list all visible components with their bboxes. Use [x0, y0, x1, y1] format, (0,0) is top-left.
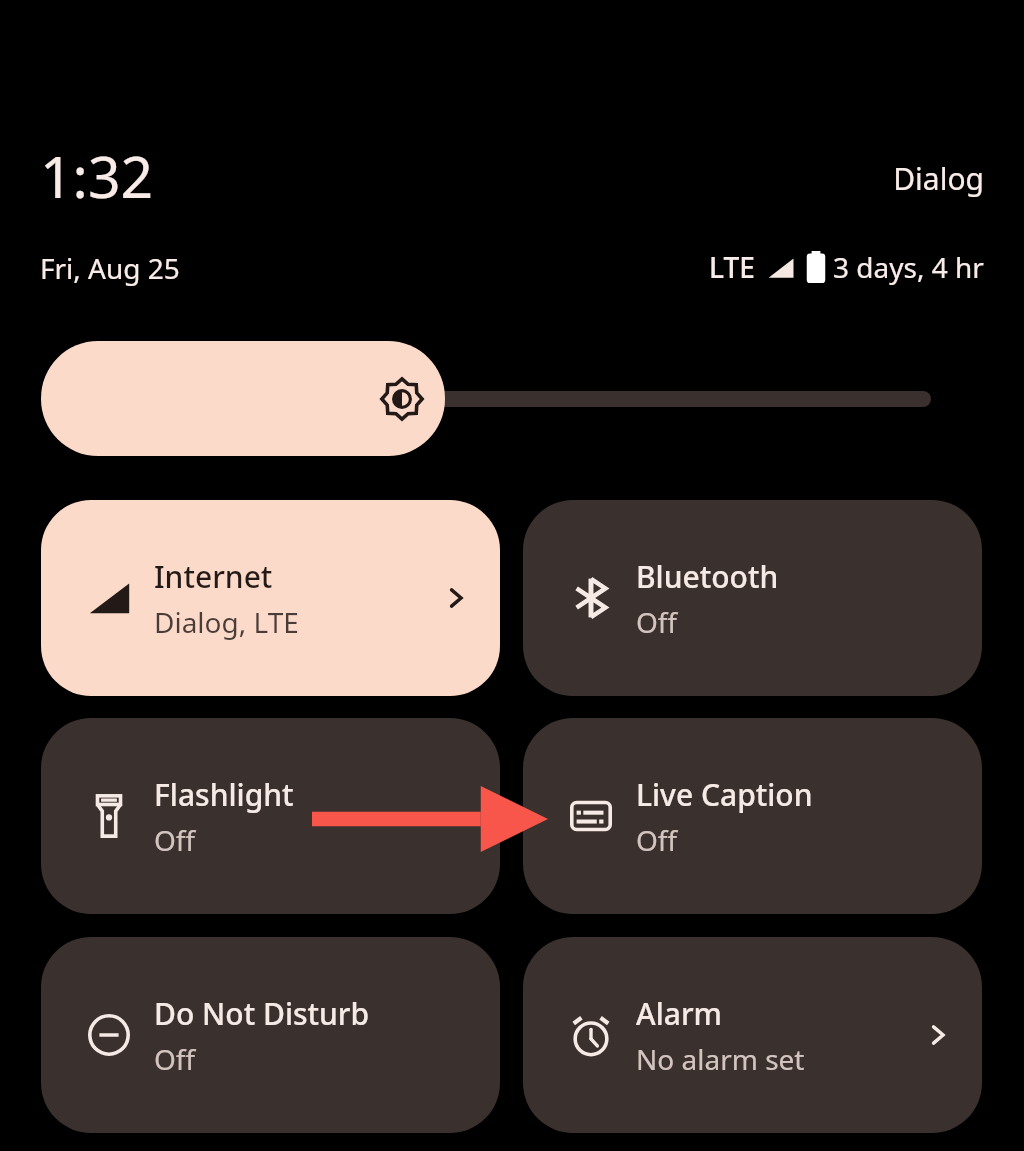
- staticText: No alarm set: [636, 1040, 805, 1078]
- staticText: Off: [154, 821, 196, 859]
- staticText: 3 days, 4 hr: [833, 248, 984, 286]
- button[interactable]: Do Not Disturb: [41, 937, 500, 1133]
- button[interactable]: Flashlight: [41, 718, 500, 914]
- staticText: Bluetooth: [636, 556, 779, 597]
- staticText: Off: [636, 821, 678, 859]
- staticText: Dialog, LTE: [154, 603, 299, 641]
- staticText: Alarm: [636, 993, 723, 1034]
- staticText: Dialog: [600, 158, 984, 199]
- button[interactable]: Internet: [41, 500, 500, 696]
- button[interactable]: Bluetooth: [523, 500, 982, 696]
- staticText: Off: [154, 1040, 196, 1078]
- button[interactable]: Brightness: [41, 341, 445, 456]
- staticText: LTE: [709, 248, 755, 286]
- staticText: 1:32: [40, 137, 154, 215]
- staticText: Fri, Aug 25: [40, 249, 180, 287]
- button[interactable]: Alarm: [523, 937, 982, 1133]
- staticText: Live Caption: [636, 774, 813, 815]
- staticText: Flashlight: [154, 774, 294, 815]
- staticText: Internet: [154, 556, 273, 597]
- staticText: Off: [636, 603, 678, 641]
- button[interactable]: Live Caption: [523, 718, 982, 914]
- staticText: Do Not Disturb: [154, 993, 370, 1034]
